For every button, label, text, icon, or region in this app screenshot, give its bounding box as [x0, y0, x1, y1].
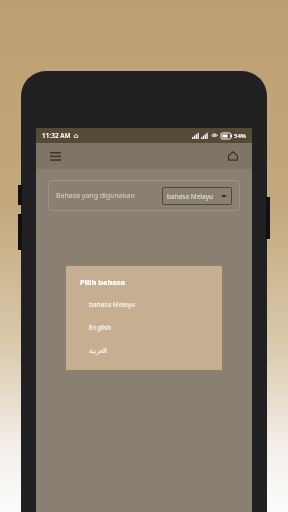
- button[interactable]: bahasa Melayu: [162, 187, 232, 205]
- staticText: Pilih bahasa: [80, 277, 126, 287]
- button[interactable]: Menu: [46, 147, 64, 165]
- staticText: Bahasa yang digunakan: [56, 191, 135, 201]
- button[interactable]: العربية: [89, 346, 107, 355]
- button[interactable]: Bahasa yang digunakan: [48, 180, 240, 211]
- button[interactable]: bahasa Melayu: [89, 300, 135, 309]
- staticText: English: [89, 323, 112, 332]
- staticText: bahasa Melayu: [89, 300, 135, 309]
- staticText: 54%: [234, 132, 246, 140]
- staticText: 11:32 AM: [42, 131, 71, 140]
- button[interactable]: English: [89, 323, 112, 332]
- staticText: العربية: [89, 347, 107, 355]
- button[interactable]: Home: [224, 147, 242, 165]
- staticText: bahasa Melayu: [167, 192, 213, 201]
